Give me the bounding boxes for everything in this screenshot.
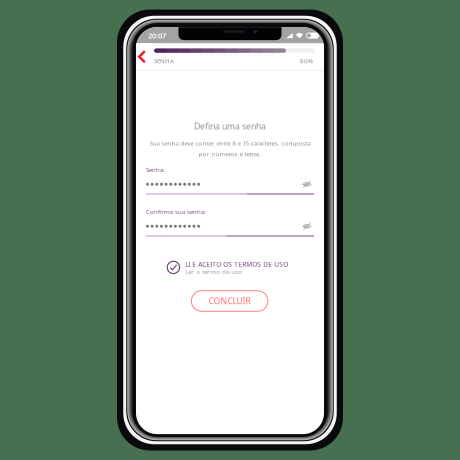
button[interactable]: CONCLUIR	[191, 291, 268, 311]
staticText: Ler o termo de uso	[185, 267, 242, 276]
staticText: Sua senha deve conter entre 8 e 15 carac…	[149, 139, 310, 147]
staticText: Senha:	[146, 166, 165, 174]
button[interactable]: Mostrar senha	[300, 221, 314, 232]
staticText: 20:07	[148, 30, 166, 41]
button[interactable]: Mostrar senha	[300, 179, 314, 190]
staticText: por números e letras.	[198, 150, 261, 158]
button[interactable]: LI E ACEITO OS TERMOS DE USO	[166, 260, 287, 275]
staticText: 80%	[300, 57, 313, 65]
staticText: CONCLUIR	[209, 295, 251, 307]
staticText: SENHA	[154, 57, 174, 65]
staticText: LI E ACEITO OS TERMOS DE USO	[185, 260, 288, 269]
staticText: Confirme sua senha:	[146, 208, 206, 216]
staticText: Defina uma senha	[194, 120, 266, 132]
button[interactable]: Voltar	[136, 43, 154, 70]
